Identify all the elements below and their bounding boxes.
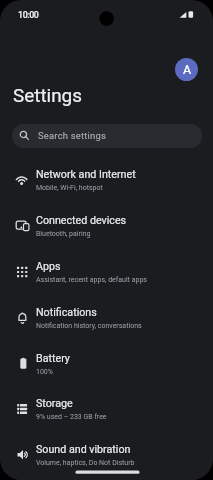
button[interactable]: Network and Internet — [0, 157, 213, 203]
button[interactable]: Notifications — [0, 295, 213, 341]
staticText: Apps — [36, 260, 61, 273]
staticText: Settings — [13, 84, 82, 106]
staticText: Connected devices — [36, 214, 127, 227]
button[interactable]: Storage — [0, 386, 213, 432]
staticText: Sound and vibration — [36, 443, 131, 456]
staticText: 10:00 — [18, 10, 39, 20]
staticText: 100% — [36, 368, 53, 376]
staticText: Bluetooth, pairing — [36, 230, 91, 238]
button[interactable]: Sound and vibration — [0, 432, 213, 478]
staticText: Mobile, Wi-Fi, hotspot — [36, 184, 103, 192]
staticText: Network and Internet — [36, 168, 136, 181]
staticText: Volume, haptics, Do Not Disturb — [36, 459, 135, 467]
button[interactable] — [12, 124, 202, 148]
staticText: Notifications — [36, 306, 97, 319]
button[interactable]: A — [175, 58, 198, 81]
button[interactable]: Battery — [0, 341, 213, 387]
staticText: Search settings — [38, 130, 107, 141]
staticText: Battery — [36, 352, 70, 365]
button[interactable]: Connected devices — [0, 203, 213, 249]
button[interactable]: Apps — [0, 249, 213, 295]
staticText: Assistant, recent apps, default apps — [36, 276, 147, 284]
staticText: Storage — [36, 397, 73, 410]
staticText: A — [183, 62, 192, 77]
staticText: 9% used – 233 GB free — [36, 413, 107, 421]
staticText: Notification history, conversations — [36, 322, 142, 330]
